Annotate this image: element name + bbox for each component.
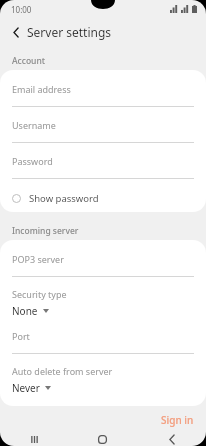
staticText: Email address	[12, 83, 71, 95]
button[interactable]: Home	[68, 433, 137, 446]
staticText: Never	[12, 381, 40, 395]
button[interactable]: Recent apps	[0, 433, 68, 446]
staticText: Sign in	[161, 413, 194, 427]
staticText: Account	[12, 55, 46, 67]
button[interactable]: Sign in	[149, 408, 206, 432]
button[interactable]: Auto delete from server	[0, 363, 206, 404]
button[interactable]: Email address	[0, 80, 206, 116]
staticText: POP3 server	[12, 253, 64, 265]
staticText: Auto delete from server	[12, 365, 113, 377]
staticText: Port	[12, 330, 30, 342]
button[interactable]: POP3 server	[0, 250, 206, 286]
staticText: Security type	[12, 288, 67, 300]
button[interactable]: Security type	[0, 286, 206, 327]
button[interactable]: Username	[0, 116, 206, 152]
staticText: Incoming server	[12, 225, 79, 237]
button[interactable]: Password	[0, 152, 206, 188]
staticText: Username	[12, 119, 56, 131]
staticText: Show password	[29, 192, 99, 205]
button[interactable]: Show password	[0, 188, 206, 208]
staticText: None	[12, 304, 38, 318]
button[interactable]: Port	[0, 327, 206, 363]
staticText: Server settings	[27, 24, 112, 40]
button[interactable]: Navigate up	[6, 22, 26, 42]
staticText: Password	[12, 155, 53, 167]
button[interactable]: Back	[137, 433, 206, 446]
staticText: 10:00	[11, 4, 32, 15]
